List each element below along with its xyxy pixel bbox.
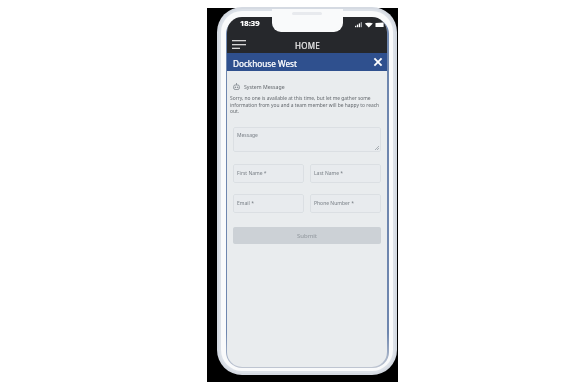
staticText: Last Name * bbox=[314, 170, 344, 177]
button[interactable]: Email * bbox=[233, 194, 304, 213]
staticText: System Message bbox=[244, 83, 285, 90]
staticText: Submit bbox=[297, 232, 318, 240]
staticText: Dockhouse West bbox=[233, 58, 297, 69]
staticText: Sorry, no one is available at this time,… bbox=[230, 95, 381, 115]
staticText: HOME bbox=[295, 40, 321, 51]
button[interactable]: Menu bbox=[229, 35, 251, 51]
staticText: Message bbox=[237, 132, 258, 139]
button[interactable]: First Name * bbox=[233, 164, 304, 183]
button[interactable]: Close bbox=[370, 53, 387, 71]
staticText: First Name * bbox=[237, 170, 267, 177]
button[interactable]: Last Name * bbox=[310, 164, 381, 183]
button[interactable]: Phone Number * bbox=[310, 194, 381, 213]
staticText: Phone Number * bbox=[314, 200, 354, 207]
button[interactable]: Submit bbox=[233, 227, 381, 244]
button[interactable]: Message bbox=[233, 127, 381, 152]
staticText: 18:39 bbox=[240, 18, 260, 28]
staticText: Email * bbox=[237, 200, 254, 207]
